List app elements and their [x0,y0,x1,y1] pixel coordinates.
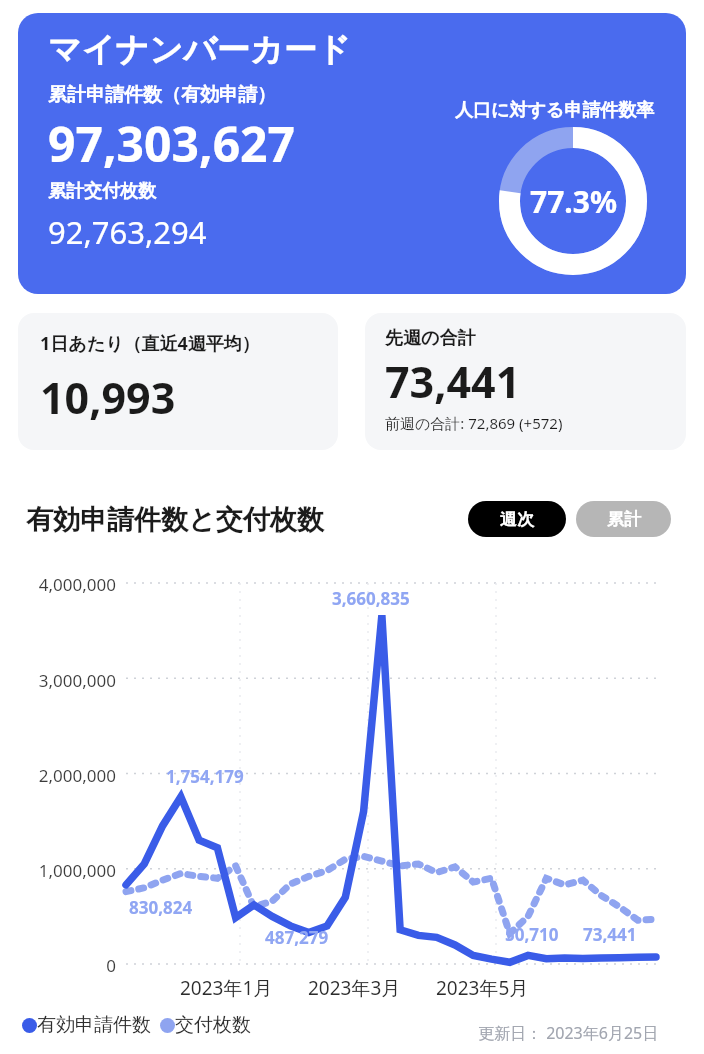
staticText: 前週の合計: 72,869 (+572) [385,413,563,433]
staticText: 4,000,000 [0,573,116,596]
staticText: 2023年3月 [308,975,401,1001]
staticText: 1,000,000 [0,859,116,882]
button[interactable]: 累計 [576,501,671,537]
staticText: 1日あたり（直近4週平均） [40,331,260,356]
staticText: 0 [0,954,116,977]
other: 申請件数率 77.3パーセント [499,127,647,275]
staticText: 先週の合計 [385,327,476,350]
button[interactable]: 1日あたり（直近4週平均） [18,313,338,450]
button[interactable]: 週次 [468,501,566,537]
staticText: 2023年1月 [180,975,273,1001]
staticText: 週次 [500,509,534,530]
staticText: マイナンバーカード [48,29,351,71]
staticText: 1,754,179 [166,765,244,788]
button[interactable]: マイナンバーカード [18,13,686,294]
staticText: 3,000,000 [0,669,116,692]
staticText: 2,000,000 [0,764,116,787]
staticText: 有効申請件数と交付枚数 [26,503,324,537]
staticText: 交付枚数 [175,1013,251,1037]
staticText: 487,279 [265,926,329,949]
staticText: 73,441 [583,923,637,946]
staticText: 人口に対する申請件数率 [455,99,655,122]
staticText: 2023年5月 [436,975,529,1001]
staticText: 更新日： 2023年6月25日 [478,1022,659,1044]
staticText: 有効申請件数 [37,1013,151,1037]
button[interactable]: 先週の合計 [365,313,686,450]
staticText: 累計 [607,509,641,530]
staticText: 累計交付枚数 [48,180,156,203]
staticText: 累計申請件数（有効申請） [48,83,276,107]
staticText: 73,441 [385,352,521,411]
staticText: 830,824 [129,896,193,919]
staticText: 97,303,627 [48,111,296,176]
staticText: 50,710 [505,923,559,946]
staticText: 10,993 [40,368,176,427]
staticText: 92,763,294 [48,211,207,253]
staticText: 3,660,835 [332,587,410,610]
staticText: 77.3% [530,181,617,222]
